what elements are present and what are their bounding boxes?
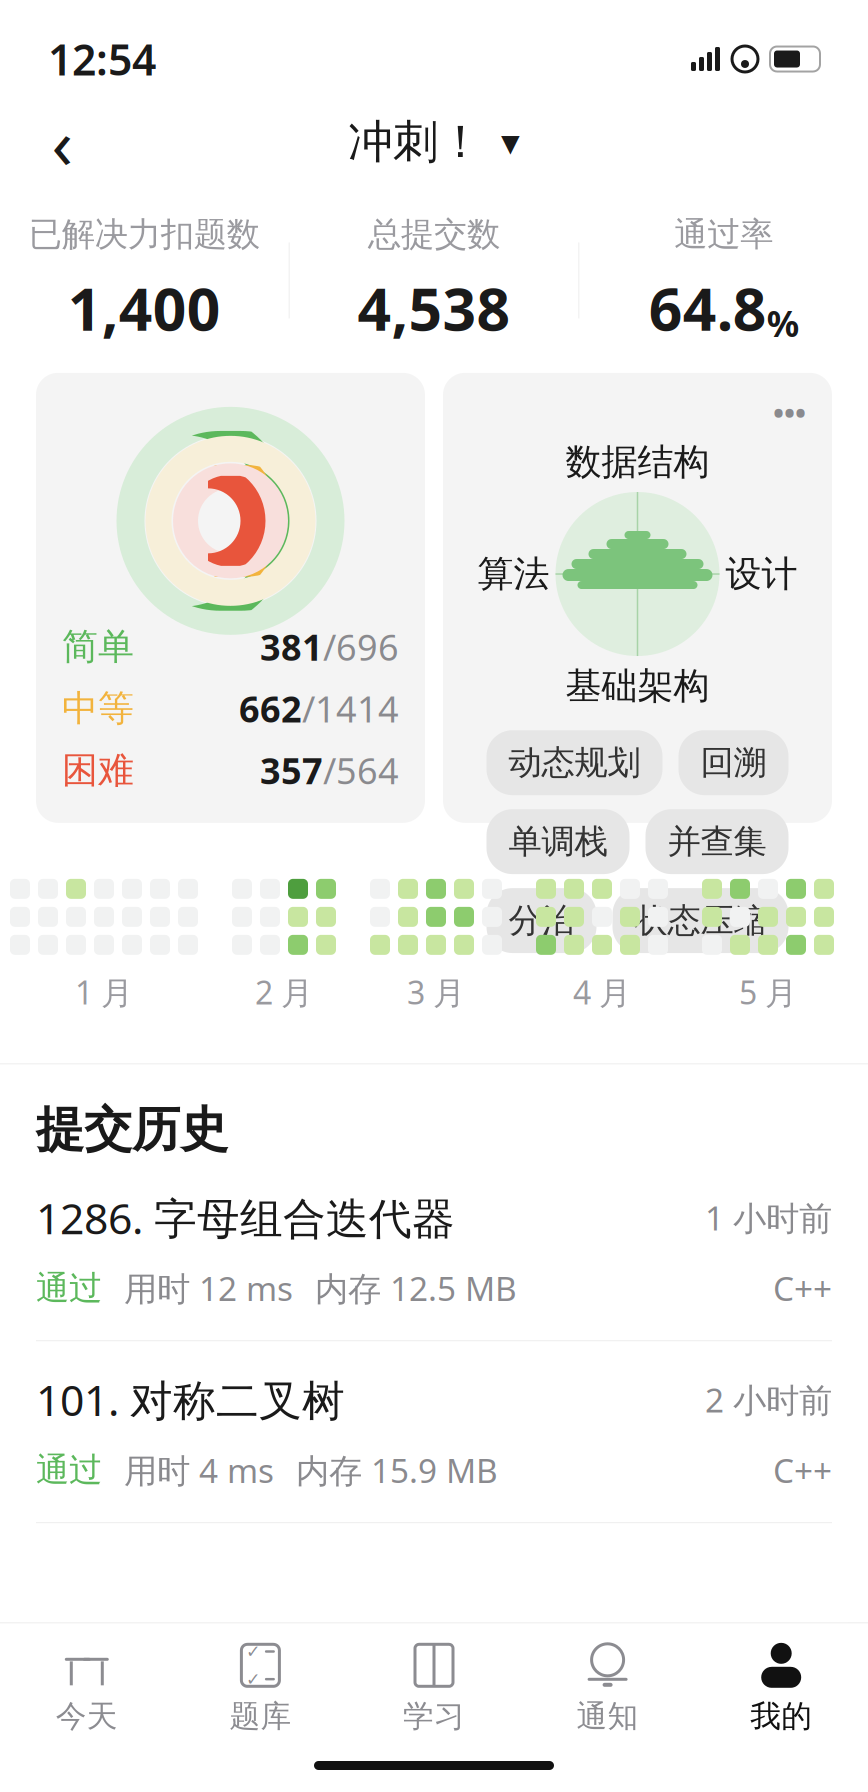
button[interactable]: 我的: [694, 1639, 868, 1739]
staticText: ▾: [501, 121, 520, 163]
staticText: 总提交数: [368, 214, 500, 255]
staticText: /564: [323, 746, 399, 794]
staticText: 内存 15.9 MB: [296, 1448, 498, 1492]
staticText: 12:54: [48, 31, 156, 87]
staticText: •••: [773, 393, 806, 432]
staticText: 我的: [750, 1697, 812, 1735]
staticText: 算法: [477, 552, 549, 596]
staticText: 357: [260, 746, 323, 794]
staticText: 题库: [229, 1697, 291, 1735]
button[interactable]: 状态压缩: [612, 888, 788, 953]
staticText: 1,400: [68, 269, 221, 347]
button[interactable]: 动态规划: [486, 730, 662, 795]
staticText: 状态压缩: [634, 900, 766, 941]
button[interactable]: 101. 对称二叉树: [0, 1341, 868, 1522]
staticText: 并查集: [667, 821, 766, 862]
staticText: 1 小时前: [705, 1195, 832, 1240]
staticText: 2 月: [255, 971, 313, 1013]
staticText: 4,538: [357, 269, 510, 347]
button[interactable]: 冲刺！: [336, 104, 532, 180]
staticText: 通过: [36, 1268, 102, 1308]
staticText: ‹: [51, 96, 72, 188]
staticText: 4 月: [573, 971, 631, 1013]
staticText: 困难: [62, 748, 134, 792]
staticText: 动态规划: [508, 742, 640, 783]
staticText: 用时 4 ms: [124, 1448, 274, 1492]
staticText: /1414: [302, 685, 399, 732]
button[interactable]: 返回: [26, 106, 98, 178]
staticText: 学习: [403, 1697, 465, 1735]
staticText: 中等: [62, 686, 134, 731]
button[interactable]: 单调栈: [486, 809, 629, 874]
button[interactable]: 今天: [0, 1639, 174, 1739]
staticText: 已解决力扣题数: [29, 214, 260, 255]
staticText: 2 小时前: [705, 1377, 832, 1422]
staticText: 内存 12.5 MB: [315, 1266, 517, 1310]
staticText: 基础架构: [565, 664, 709, 708]
staticText: 5 月: [739, 971, 797, 1013]
button[interactable]: 回溯: [678, 730, 788, 795]
staticText: C++: [773, 1266, 832, 1310]
button[interactable]: 通知: [521, 1639, 694, 1739]
button[interactable]: 学习: [347, 1639, 521, 1739]
staticText: 101. 对称二叉树: [36, 1371, 345, 1428]
staticText: 回溯: [700, 742, 766, 783]
button[interactable]: 更多: [761, 385, 818, 440]
staticText: 单调栈: [508, 821, 607, 862]
staticText: 662: [239, 685, 302, 732]
staticText: 1286. 字母组合迭代器: [36, 1189, 455, 1246]
staticText: 冲刺！: [348, 114, 483, 170]
staticText: 1 月: [75, 971, 133, 1013]
staticText: /696: [323, 623, 399, 671]
staticText: 通过率: [674, 214, 773, 255]
button[interactable]: 分治: [486, 888, 596, 953]
staticText: 分治: [508, 900, 574, 941]
staticText: 简单: [62, 625, 134, 669]
staticText: 设计: [725, 552, 797, 596]
staticText: 通知: [577, 1697, 639, 1735]
button[interactable]: ✓: [174, 1639, 347, 1739]
staticText: C++: [773, 1448, 832, 1492]
staticText: ✓: [246, 1669, 261, 1689]
staticText: 3 月: [407, 971, 465, 1013]
staticText: ✓: [246, 1642, 261, 1661]
button[interactable]: 1286. 字母组合迭代器: [0, 1159, 868, 1340]
button[interactable]: 并查集: [645, 809, 788, 874]
staticText: 提交历史: [36, 1100, 228, 1159]
staticText: 今天: [56, 1697, 118, 1735]
staticText: 数据结构: [565, 440, 709, 484]
staticText: 用时 12 ms: [124, 1266, 293, 1310]
staticText: 381: [260, 623, 323, 671]
staticText: %: [767, 299, 799, 347]
staticText: 通过: [36, 1449, 102, 1490]
staticText: 64.8: [649, 269, 767, 347]
